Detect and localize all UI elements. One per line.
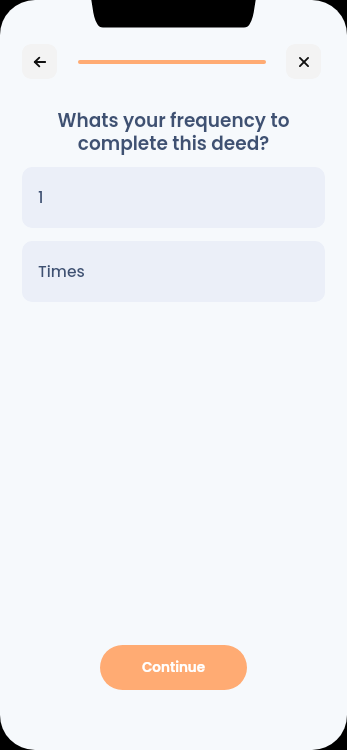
staticText: 1 <box>38 187 44 209</box>
button[interactable]: Back <box>22 44 57 79</box>
staticText: Whats your frequency to complete this de… <box>30 108 317 156</box>
button[interactable]: 1 <box>22 167 325 228</box>
button[interactable]: Times <box>22 241 325 302</box>
staticText: Continue <box>142 658 206 677</box>
staticText: Times <box>38 261 85 283</box>
button[interactable]: Close <box>286 44 321 79</box>
button[interactable]: Continue <box>100 645 247 690</box>
